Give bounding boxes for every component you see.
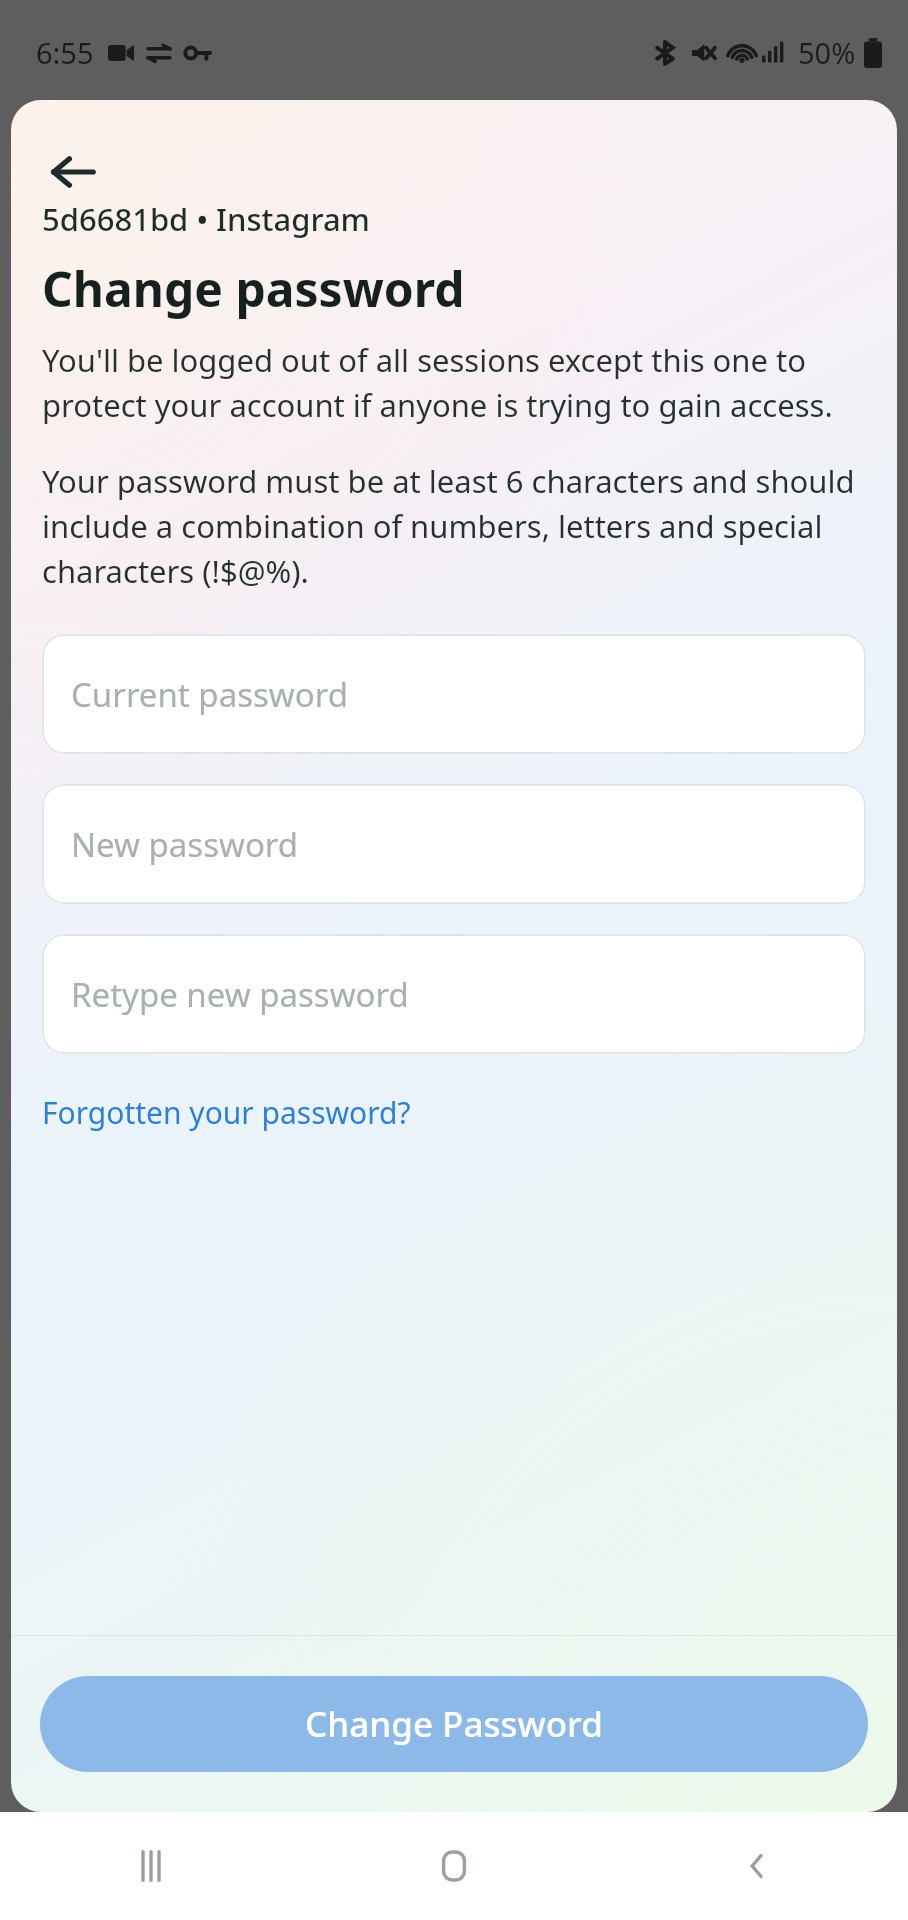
button[interactable]: Change Password: [40, 1676, 868, 1772]
button[interactable]: New password: [42, 784, 866, 904]
staticText: Change password: [42, 256, 465, 321]
button[interactable]: Back: [37, 136, 109, 208]
staticText: 6:55: [36, 33, 94, 72]
staticText: You'll be logged out of all sessions exc…: [42, 339, 866, 426]
staticText: Change Password: [305, 1700, 603, 1748]
staticText: 5d6681bd • Instagram: [42, 198, 370, 240]
staticText: New password: [71, 822, 299, 867]
button[interactable]: Back: [605, 1812, 908, 1920]
button[interactable]: Recents: [0, 1812, 302, 1920]
button[interactable]: Retype new password: [42, 934, 866, 1054]
staticText: Your password must be at least 6 charact…: [42, 460, 866, 592]
staticText: Current password: [71, 672, 348, 717]
button[interactable]: Home: [302, 1812, 605, 1920]
button[interactable]: Current password: [42, 634, 866, 754]
staticText: Forgotten your password?: [42, 1092, 411, 1133]
button[interactable]: Forgotten your password?: [42, 1088, 411, 1137]
staticText: Retype new password: [71, 972, 409, 1017]
staticText: 50%: [798, 33, 856, 72]
